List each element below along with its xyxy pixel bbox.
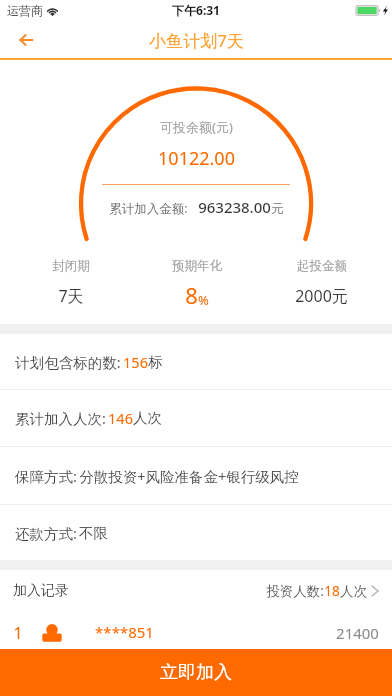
- staticText: 7天: [58, 285, 84, 307]
- staticText: 封闭期: [52, 258, 90, 274]
- staticText: 不限: [79, 524, 108, 542]
- staticText: 累计加入金额:: [109, 200, 188, 217]
- staticText: 10122.00: [158, 146, 235, 171]
- staticText: 投资人数:: [266, 582, 324, 600]
- staticText: 还款方式:: [13, 523, 79, 543]
- button[interactable]: 1: [0, 612, 392, 649]
- button[interactable]: 立即加入: [0, 649, 392, 696]
- staticText: 分散投资+风险准备金+银行级风控: [79, 466, 299, 486]
- staticText: 可投余额(元): [160, 118, 233, 136]
- staticText: 下午6:31: [172, 2, 220, 18]
- staticText: 立即加入: [160, 661, 232, 684]
- staticText: 标: [148, 353, 163, 371]
- staticText: 运营商: [7, 3, 43, 18]
- button[interactable]: 计划包含标的数:: [0, 334, 392, 389]
- staticText: 人次: [340, 583, 367, 600]
- staticText: 2000元: [295, 285, 348, 307]
- staticText: 加入记录: [13, 582, 69, 600]
- staticText: 146: [108, 408, 133, 428]
- staticText: 人次: [133, 409, 162, 427]
- button[interactable]: 保障方式:: [0, 447, 392, 504]
- staticText: 21400: [336, 623, 379, 643]
- staticText: 累计加入人次:: [13, 408, 108, 428]
- staticText: 156: [123, 352, 148, 372]
- staticText: %: [198, 291, 209, 309]
- button[interactable]: 累计加入人次:: [0, 390, 392, 446]
- staticText: 小鱼计划7天: [149, 29, 244, 52]
- staticText: 元: [271, 201, 284, 217]
- staticText: 18: [324, 582, 340, 600]
- staticText: 计划包含标的数:: [13, 352, 123, 372]
- staticText: 963238.00: [198, 197, 271, 217]
- button[interactable]: Back: [0, 20, 46, 58]
- staticText: 8: [185, 280, 198, 310]
- button[interactable]: 还款方式:: [0, 505, 392, 560]
- staticText: 预期年化: [172, 258, 222, 274]
- staticText: 起投金额: [297, 258, 347, 274]
- staticText: 保障方式:: [13, 466, 79, 486]
- staticText: 1: [13, 622, 23, 644]
- button[interactable]: 加入记录: [0, 570, 392, 612]
- staticText: ****851: [95, 622, 154, 642]
